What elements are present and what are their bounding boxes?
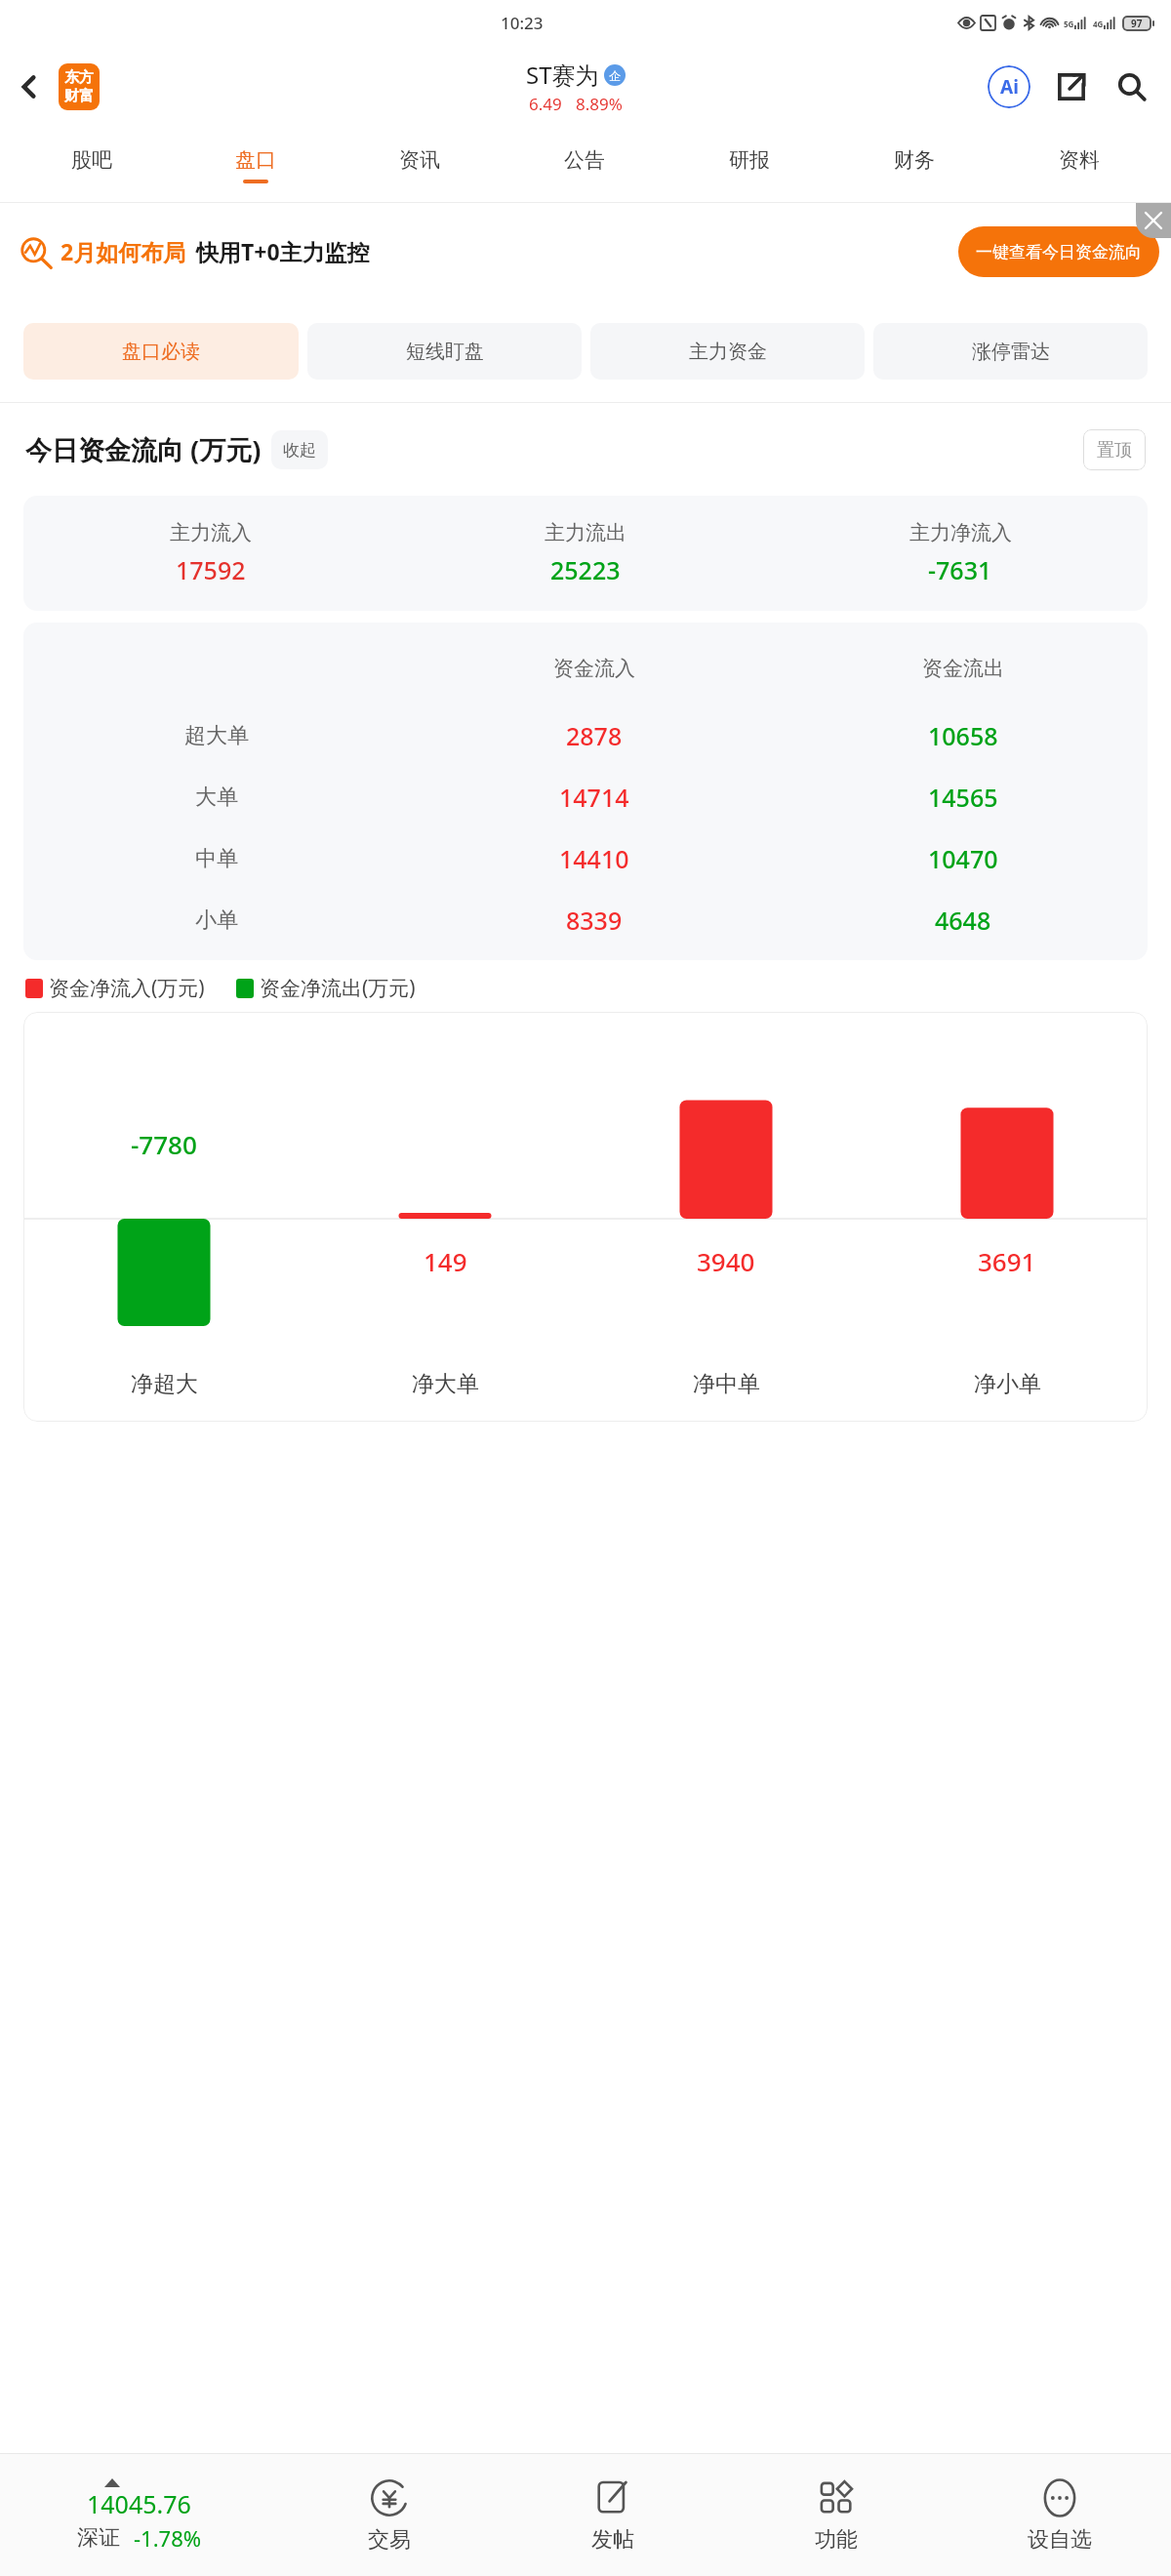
staticText: 4G bbox=[1093, 19, 1104, 29]
button[interactable]: 小单 bbox=[23, 889, 1148, 950]
staticText: 3940 bbox=[697, 1244, 755, 1278]
staticText: 一键查看今日资金流向 bbox=[976, 242, 1142, 262]
staticText: 4648 bbox=[935, 904, 991, 937]
staticText: 主力资金 bbox=[689, 340, 767, 364]
button[interactable]: 研报 bbox=[666, 128, 831, 202]
button[interactable]: -7780 bbox=[23, 1012, 1148, 1422]
staticText: 97 bbox=[1131, 17, 1143, 30]
button[interactable]: 一键查看今日资金流向 bbox=[976, 226, 1142, 277]
staticText: 14565 bbox=[928, 781, 998, 814]
button[interactable]: 14045.76 bbox=[0, 2454, 278, 2576]
button[interactable]: Back bbox=[6, 63, 53, 110]
button[interactable]: 股吧 bbox=[10, 128, 174, 202]
button[interactable]: 主力资金 bbox=[590, 323, 865, 380]
staticText: 交易 bbox=[368, 2526, 411, 2554]
staticText: 深证 bbox=[77, 2524, 120, 2552]
button[interactable]: 盘口必读 bbox=[23, 323, 299, 380]
staticText: 5G bbox=[1064, 19, 1074, 29]
staticText: 发帖 bbox=[591, 2526, 634, 2554]
staticText: 财富 bbox=[64, 87, 94, 105]
staticText: 资讯 bbox=[399, 147, 440, 173]
staticText: 资料 bbox=[1059, 147, 1100, 173]
staticText: 资金净流入(万元) bbox=[49, 974, 205, 1002]
button[interactable]: 资料 bbox=[996, 128, 1161, 202]
button[interactable]: Share bbox=[1046, 61, 1097, 112]
staticText: 2月如何布局 bbox=[61, 236, 186, 266]
button[interactable]: 置顶 bbox=[1097, 429, 1132, 470]
staticText: 资金流出 bbox=[922, 656, 1004, 681]
staticText: -7780 bbox=[131, 1127, 197, 1161]
staticText: 功能 bbox=[815, 2526, 858, 2554]
button[interactable]: ST赛为 bbox=[526, 59, 626, 115]
staticText: 盘口必读 bbox=[122, 340, 200, 364]
button[interactable]: Search bbox=[1107, 61, 1157, 112]
staticText: 8.89% bbox=[576, 93, 623, 115]
staticText: 14045.76 bbox=[87, 2487, 191, 2520]
staticText: 快用T+0主力监控 bbox=[196, 236, 370, 266]
staticText: 大单 bbox=[195, 784, 238, 811]
button[interactable]: Close ad bbox=[1136, 203, 1171, 238]
staticText: 14714 bbox=[559, 781, 629, 814]
staticText: 东方 bbox=[64, 68, 94, 87]
button[interactable]: 功能 bbox=[724, 2454, 948, 2576]
button[interactable]: 财务 bbox=[831, 128, 996, 202]
staticText: 财务 bbox=[894, 147, 935, 173]
staticText: 净超大 bbox=[131, 1370, 198, 1398]
button[interactable]: 发帖 bbox=[501, 2454, 724, 2576]
button[interactable]: 超大单 bbox=[23, 704, 1148, 766]
staticText: 小单 bbox=[195, 906, 238, 934]
staticText: 8339 bbox=[566, 904, 623, 937]
staticText: 公告 bbox=[564, 147, 605, 173]
staticText: 10:23 bbox=[501, 12, 544, 34]
staticText: 6.49 bbox=[529, 93, 562, 115]
button[interactable]: 2月如何布局 bbox=[20, 203, 1159, 300]
staticText: 净中单 bbox=[693, 1370, 760, 1398]
staticText: -7631 bbox=[928, 553, 992, 586]
staticText: 2878 bbox=[566, 719, 623, 752]
staticText: 净小单 bbox=[974, 1370, 1041, 1398]
staticText: 盘口 bbox=[235, 147, 276, 173]
staticText: 中单 bbox=[195, 845, 238, 872]
button[interactable]: 涨停雷达 bbox=[873, 323, 1148, 380]
button[interactable]: 设自选 bbox=[948, 2454, 1171, 2576]
staticText: 今日资金流向 (万元) bbox=[25, 431, 262, 467]
staticText: 研报 bbox=[729, 147, 770, 173]
staticText: 主力净流入 bbox=[909, 520, 1012, 545]
button[interactable]: 东方 bbox=[59, 63, 100, 110]
staticText: 置顶 bbox=[1097, 439, 1132, 462]
button[interactable]: 中单 bbox=[23, 827, 1148, 889]
staticText: 涨停雷达 bbox=[972, 340, 1050, 364]
staticText: ST赛为 bbox=[526, 59, 599, 91]
staticText: -1.78% bbox=[134, 2523, 202, 2553]
staticText: 设自选 bbox=[1028, 2526, 1092, 2554]
staticText: 股吧 bbox=[71, 147, 112, 173]
button[interactable]: 收起 bbox=[283, 430, 316, 469]
staticText: 149 bbox=[424, 1244, 467, 1278]
staticText: 14410 bbox=[559, 842, 629, 875]
button[interactable]: 盘口 bbox=[174, 128, 338, 202]
button[interactable]: AI assistant bbox=[984, 61, 1034, 112]
staticText: 资金净流出(万元) bbox=[260, 974, 416, 1002]
staticText: 净大单 bbox=[412, 1370, 479, 1398]
staticText: 收起 bbox=[283, 440, 316, 461]
button[interactable]: 大单 bbox=[23, 766, 1148, 827]
staticText: Ai bbox=[1000, 74, 1019, 100]
staticText: 主力流入 bbox=[170, 520, 252, 545]
button[interactable]: 短线盯盘 bbox=[307, 323, 582, 380]
button[interactable]: 交易 bbox=[278, 2454, 501, 2576]
button[interactable]: 公告 bbox=[502, 128, 666, 202]
staticText: 超大单 bbox=[184, 722, 249, 749]
staticText: 企 bbox=[609, 68, 621, 83]
staticText: 10470 bbox=[928, 842, 998, 875]
button[interactable]: 主力流入 bbox=[23, 496, 1148, 611]
staticText: 10658 bbox=[928, 719, 998, 752]
staticText: 资金流入 bbox=[553, 656, 635, 681]
staticText: 17592 bbox=[176, 553, 246, 586]
button[interactable]: 资讯 bbox=[338, 128, 502, 202]
staticText: 短线盯盘 bbox=[406, 340, 484, 364]
staticText: 主力流出 bbox=[545, 520, 626, 545]
staticText: 25223 bbox=[550, 553, 621, 586]
staticText: 3691 bbox=[978, 1244, 1036, 1278]
